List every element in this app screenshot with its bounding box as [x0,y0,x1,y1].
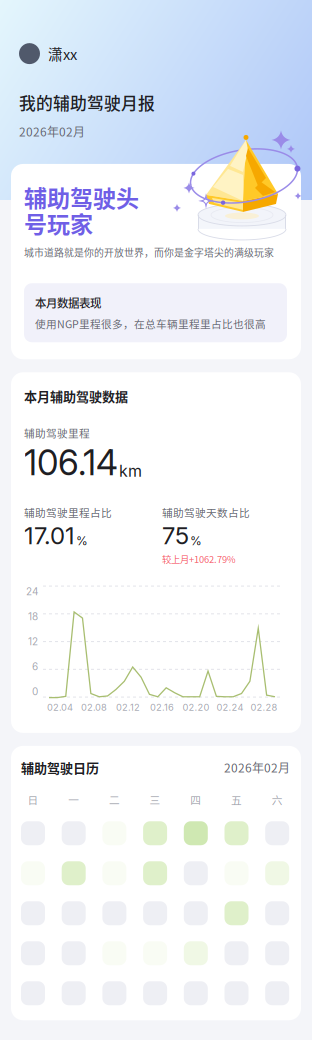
staticText: 辅助驾驶日历 [21,758,99,777]
staticText: % [190,534,202,548]
staticText: 日 [27,792,38,807]
staticText: 辅助驾驶天数占比 [162,505,250,520]
staticText: 六 [272,792,283,807]
staticText: 02.20 [182,702,209,713]
staticText: 本月辅助驾驶数据 [24,386,128,405]
staticText: 五 [231,792,242,807]
staticText: 02.12 [116,702,140,713]
staticText: 17.01 [24,521,75,550]
button[interactable]: 潇xx [19,43,77,64]
staticText: 号玩家 [24,206,93,240]
staticText: 潇xx [48,43,77,64]
staticText: 0 [32,685,38,698]
staticText: 三 [150,792,161,807]
staticText: 12 [28,635,38,648]
staticText: 02.16 [150,702,174,713]
staticText: 二 [109,792,120,807]
staticText: 较上月+1062.79% [162,552,236,566]
staticText: 使用NGP里程很多，在总车辆里程里占比也很高 [35,316,266,331]
staticText: 02.24 [216,702,243,713]
staticText: 75 [162,521,189,550]
staticText: 本月数据表现 [35,294,101,311]
staticText: 18 [28,611,38,623]
staticText: 24 [26,586,38,598]
staticText: 2026年02月 [19,123,85,140]
staticText: 辅助驾驶头 [24,180,139,214]
staticText: 2026年02月 [224,759,290,776]
staticText: 02.08 [81,702,107,713]
staticText: 我的辅助驾驶月报 [19,90,155,114]
staticText: 辅助驾驶里程 [24,425,90,441]
staticText: 02.04 [47,702,73,713]
staticText: % [76,534,88,548]
staticText: 辅助驾驶里程占比 [24,505,112,520]
staticText: 106.14 [24,442,118,483]
staticText: 02.28 [250,702,277,713]
staticText: 6 [32,660,38,673]
staticText: km [119,461,142,481]
staticText: 城市道路就是你的开放世界，而你是金字塔尖的满级玩家 [24,245,274,259]
staticText: 四 [190,792,201,807]
staticText: 一 [68,792,79,807]
